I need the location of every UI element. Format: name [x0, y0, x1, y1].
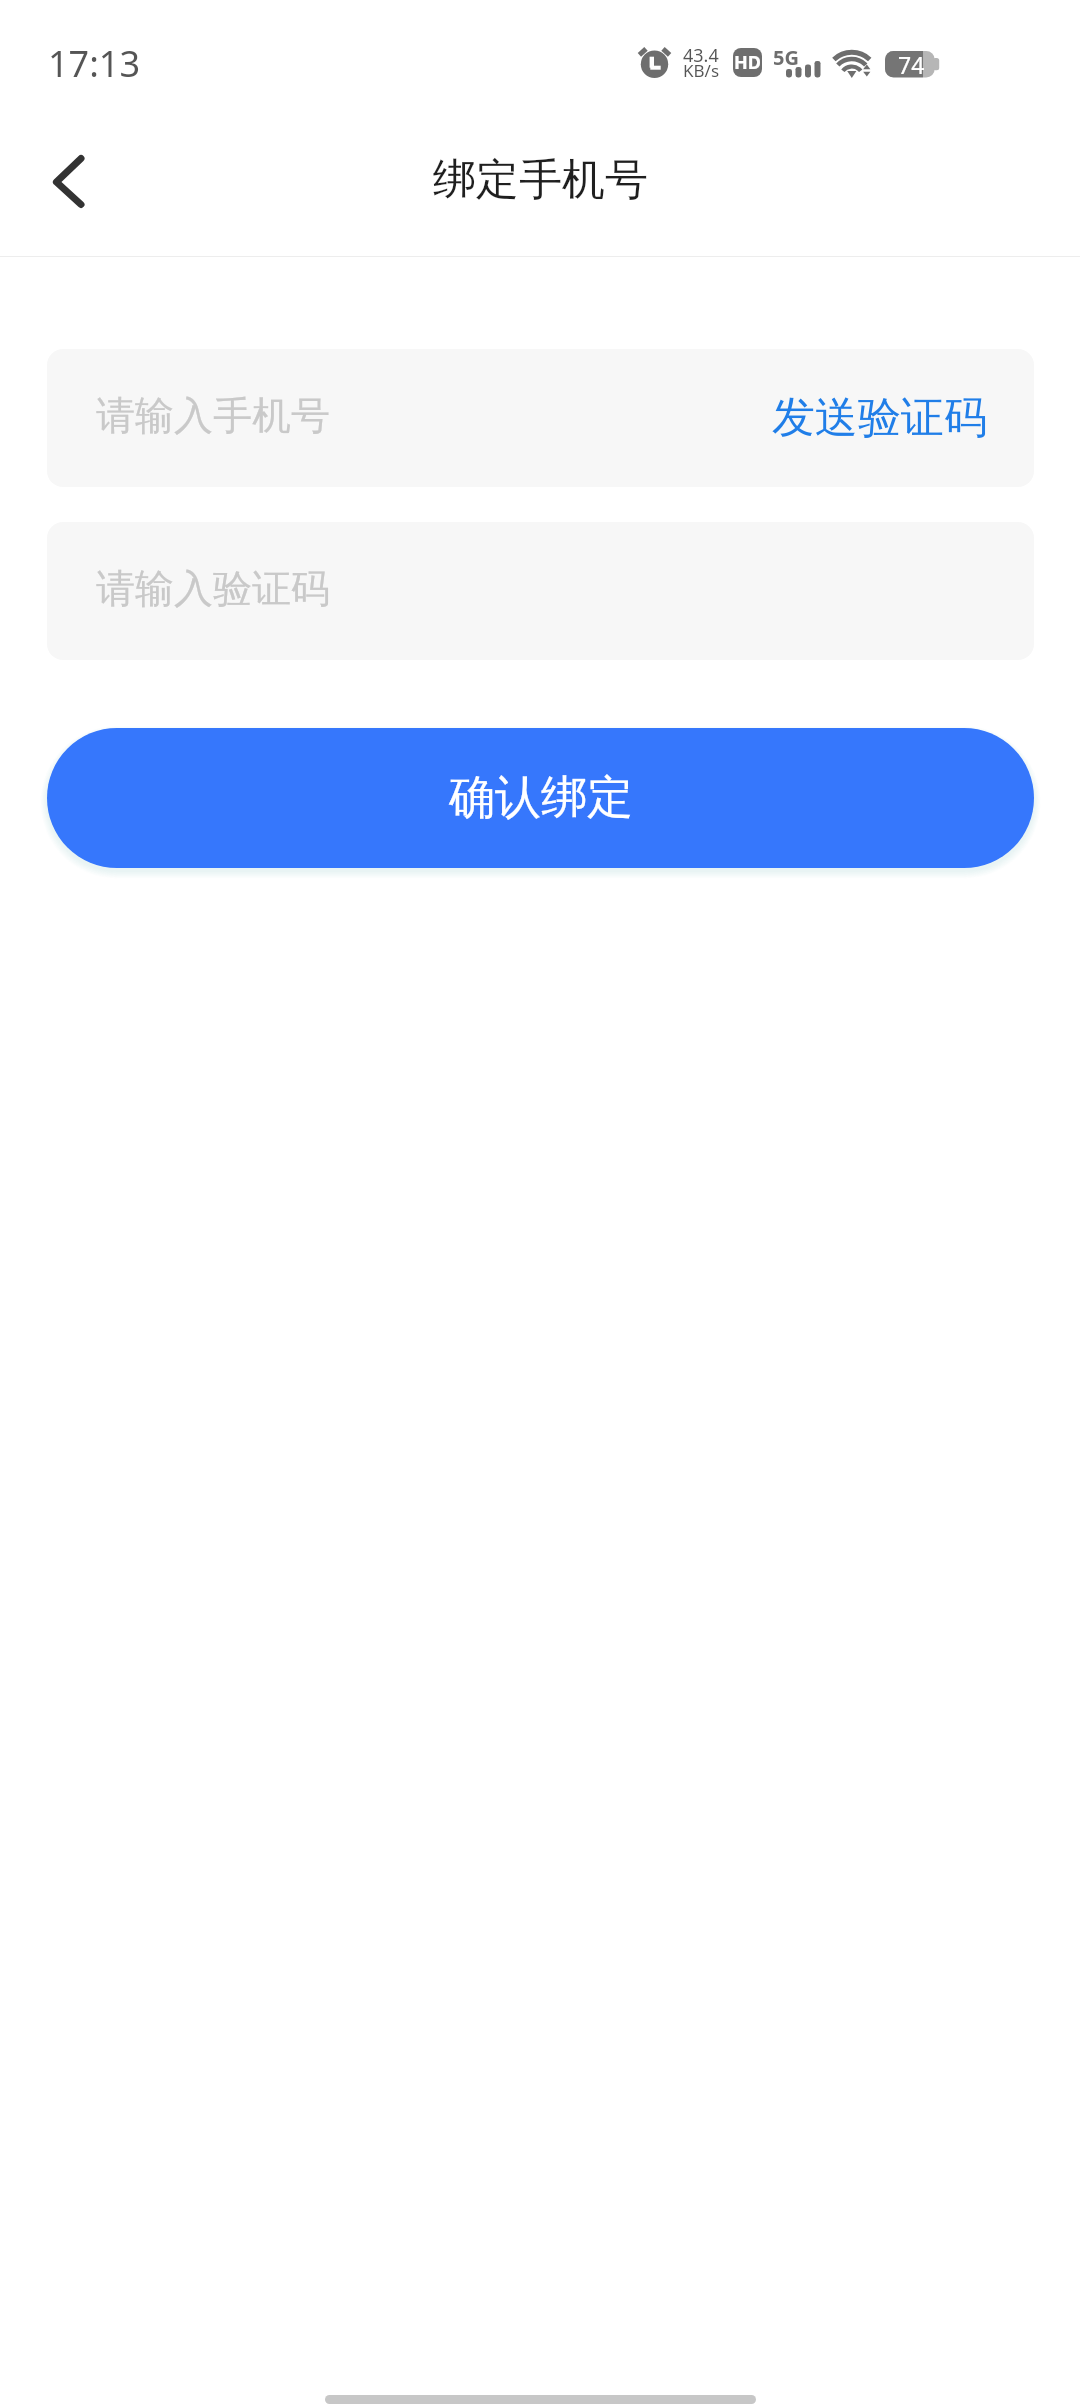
staticText: 43.4 — [683, 43, 719, 68]
staticText: HD — [734, 50, 761, 75]
staticText: 绑定手机号 — [433, 153, 648, 207]
button[interactable]: Back — [20, 138, 112, 230]
button[interactable]: 请输入手机号 — [47, 349, 1034, 487]
staticText: 17:13 — [48, 39, 141, 88]
staticText: KB/s — [683, 59, 720, 82]
staticText: 发送验证码 — [772, 391, 987, 445]
staticText: 74 — [898, 49, 925, 79]
staticText: 5G — [773, 44, 799, 71]
staticText: 确认绑定 — [449, 769, 633, 827]
button[interactable]: 请输入验证码 — [47, 522, 1034, 660]
staticText: 请输入手机号 — [96, 391, 330, 440]
staticText: 请输入验证码 — [96, 564, 330, 613]
button[interactable]: 确认绑定 — [47, 728, 1034, 868]
button[interactable]: 发送验证码 — [725, 349, 1034, 487]
